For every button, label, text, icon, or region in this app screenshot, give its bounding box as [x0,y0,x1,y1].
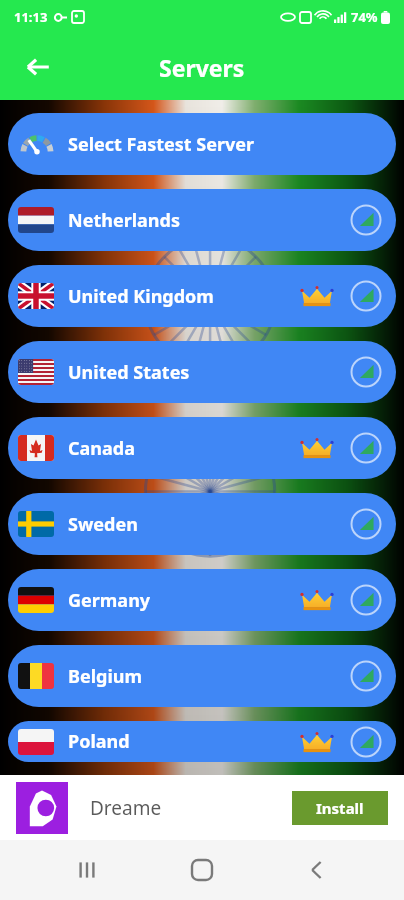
button[interactable]: Poland [8,721,396,762]
button[interactable]: Dreame [0,775,404,840]
other: Signal strength [350,356,382,388]
staticText: 11:13 [14,8,48,26]
staticText: United Kingdom [68,284,214,309]
staticText: Netherlands [68,208,180,233]
other: Signal strength [350,432,382,464]
button[interactable]: United States [8,341,396,403]
button[interactable]: Recent apps [59,842,115,898]
other: Signal strength [350,280,382,312]
staticText: Poland [68,729,130,754]
other: Signal strength [350,726,382,758]
other: Signal strength [350,204,382,236]
other: Signal strength [350,508,382,540]
button[interactable]: Install [292,791,388,825]
button[interactable]: Home [174,842,230,898]
button[interactable]: Canada [8,417,396,479]
button[interactable]: Germany [8,569,396,631]
staticText: Canada [68,436,135,461]
button[interactable]: Netherlands [8,189,396,251]
staticText: 74% [351,8,378,26]
staticText: Select Fastest Server [68,132,255,157]
staticText: Servers [159,52,245,83]
button[interactable]: Back [289,842,345,898]
staticText: Germany [68,588,151,613]
staticText: Dreame [90,795,162,821]
button[interactable]: Select Fastest Server [8,113,396,175]
staticText: Belgium [68,664,143,689]
button[interactable]: United Kingdom [8,265,396,327]
other: Signal strength [350,584,382,616]
staticText: Install [316,798,364,818]
button[interactable]: Belgium [8,645,396,707]
staticText: Sweden [68,512,138,537]
button[interactable]: Back [16,45,60,89]
button[interactable]: Sweden [8,493,396,555]
other: Signal strength [350,660,382,692]
staticText: United States [68,360,190,385]
